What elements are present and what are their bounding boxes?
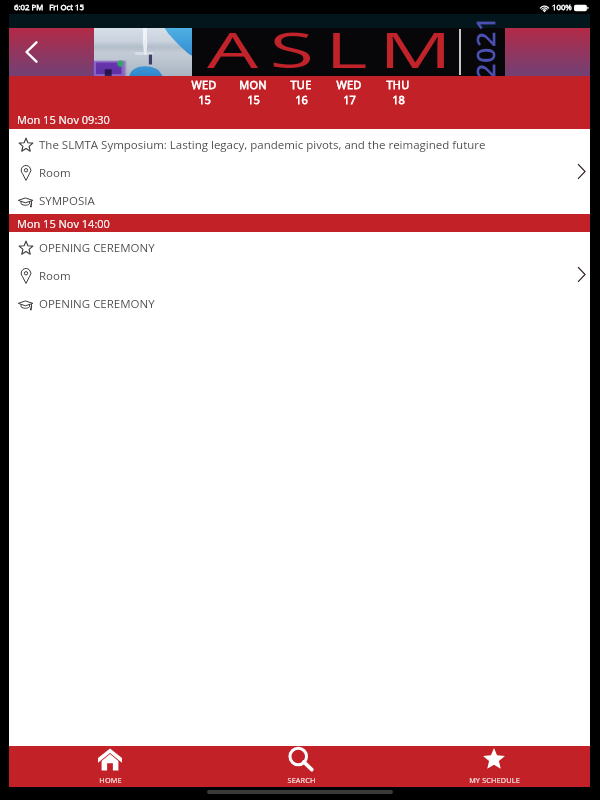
staticText: HOME [99,775,122,785]
button[interactable]: THU [374,75,422,109]
staticText: Mon 15 Nov 14:00 [17,216,110,231]
staticText: 100% [552,2,572,13]
staticText: Mon 15 Nov 09:30 [17,112,110,127]
button[interactable]: Back [14,28,48,76]
staticText: ASLM [207,15,465,83]
staticText: MY SCHEDULE [469,775,520,785]
staticText: 18 [392,92,405,107]
staticText: SYMPOSIA [39,193,95,209]
staticText: OPENING CEREMONY [39,240,155,256]
staticText: The SLMTA Symposium: Lasting legacy, pan… [39,137,486,153]
button[interactable]: MY SCHEDULE [446,746,542,787]
staticText: 17 [343,92,356,107]
button[interactable]: SEARCH [253,746,349,787]
button[interactable]: The SLMTA Symposium: Lasting legacy, pan… [9,129,590,214]
staticText: 16 [295,92,308,107]
staticText: SEARCH [287,775,316,785]
staticText: OPENING CEREMONY [39,296,155,312]
staticText: MON [239,77,267,92]
button[interactable]: WED [325,75,373,109]
staticText: 15 [198,92,211,107]
staticText: 2021 [466,14,501,78]
staticText: 6:02 PM Fri Oct 15 [14,2,84,13]
button[interactable]: MON [229,75,277,109]
button[interactable]: WED [180,75,228,109]
staticText: Room [39,165,71,181]
button[interactable]: OPENING CEREMONY [9,232,590,317]
staticText: WED [336,77,362,92]
staticText: 15 [247,92,260,107]
staticText: WED [191,77,217,92]
staticText: THU [386,77,410,92]
staticText: TUE [290,77,312,92]
button[interactable]: TUE [277,75,325,109]
button[interactable]: HOME [62,746,158,787]
staticText: Room [39,268,71,284]
